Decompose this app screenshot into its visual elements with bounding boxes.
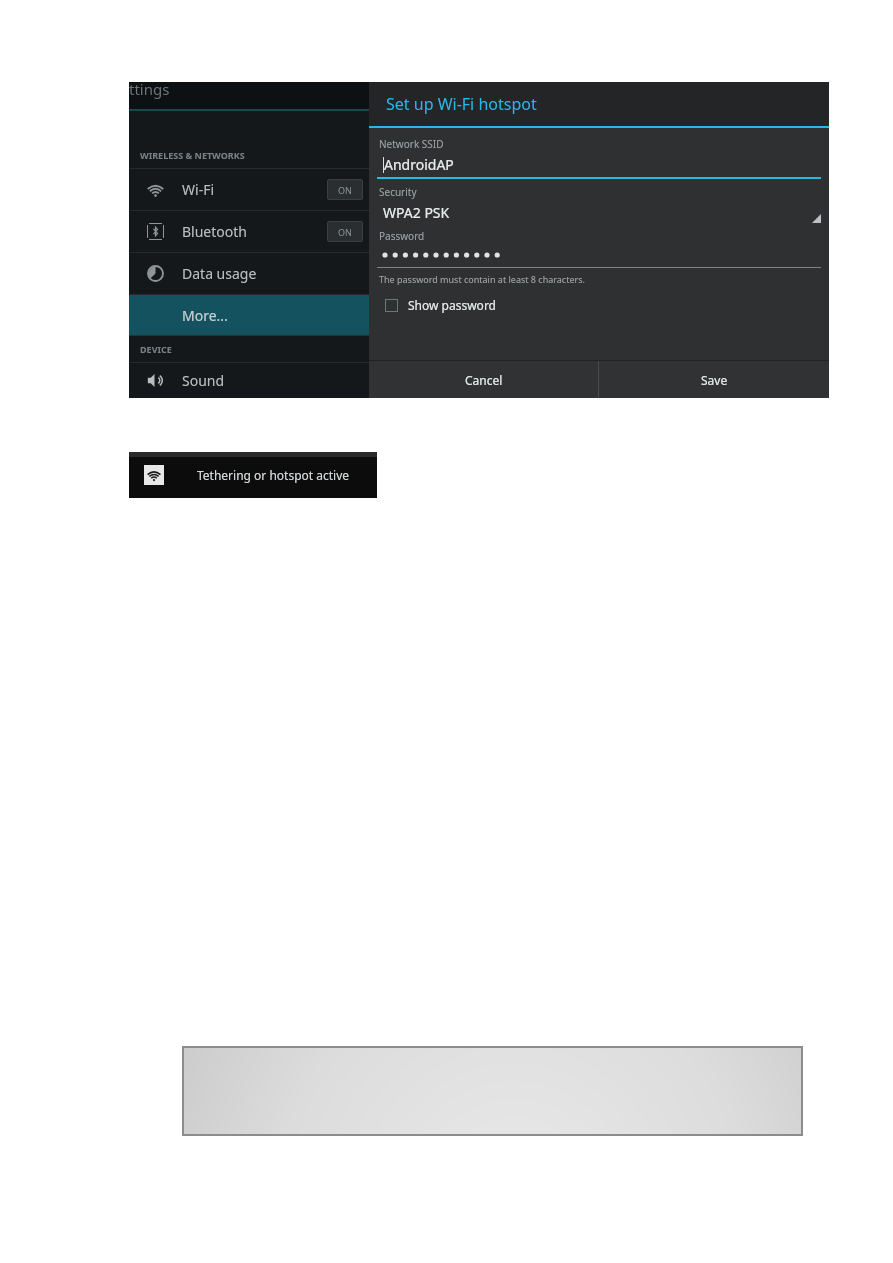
other: Sound [147, 372, 164, 389]
staticText: WPA2 PSK [383, 203, 450, 222]
other: Bluetooth [147, 223, 164, 240]
button[interactable]: More... [129, 295, 369, 335]
staticText: Save [701, 372, 728, 388]
button[interactable]: Cancel [369, 361, 598, 398]
staticText: Password [379, 229, 425, 243]
staticText: More... [182, 306, 228, 325]
staticText: Set up Wi-Fi hotspot [386, 93, 537, 115]
staticText: AndroidAP [384, 155, 454, 174]
staticText: The password must contain at least 8 cha… [379, 273, 585, 285]
staticText: Data usage [182, 264, 257, 283]
button[interactable]: Sound [129, 363, 369, 398]
staticText: ON [338, 184, 352, 196]
staticText: Show password [408, 297, 496, 313]
other: Data usage [147, 265, 164, 282]
button[interactable]: Wi-Fi [129, 169, 369, 210]
staticText: Cancel [465, 372, 503, 388]
staticText: ON [338, 226, 352, 238]
staticText: Tethering or hotspot active [197, 467, 350, 483]
other: Wi-Fi [147, 181, 164, 198]
staticText: Sound [182, 371, 225, 390]
other: Wi-Fi [147, 468, 161, 482]
button[interactable]: Save [599, 361, 829, 398]
staticText: ttings [129, 79, 170, 99]
button[interactable]: Data usage [129, 253, 369, 294]
staticText: Wi-Fi [182, 180, 215, 199]
staticText: DEVICE [140, 343, 172, 355]
staticText: Network SSID [379, 137, 444, 151]
button[interactable]: Bluetooth [129, 211, 369, 252]
staticText: WIRELESS & NETWORKS [140, 149, 245, 161]
staticText: Bluetooth [182, 222, 247, 241]
button[interactable]: Show password [377, 295, 502, 315]
staticText: Security [379, 185, 417, 199]
